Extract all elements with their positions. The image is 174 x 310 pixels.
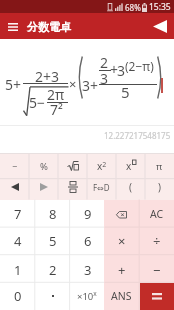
- button[interactable]: 0: [0, 282, 35, 310]
- staticText: 8: [49, 205, 57, 223]
- staticText: −: [153, 261, 161, 279]
- button[interactable]: [59, 156, 87, 176]
- staticText: 5−: [29, 93, 46, 112]
- staticText: F⇔D: [93, 182, 110, 193]
- staticText: +: [110, 60, 119, 79]
- staticText: 0: [14, 287, 22, 305]
- staticText: 12.227217548175: [104, 130, 171, 141]
- staticText: π: [156, 160, 163, 173]
- staticText: x2: [97, 159, 107, 173]
- button[interactable]: 2: [35, 256, 70, 284]
- staticText: ×10x: [77, 289, 97, 303]
- staticText: (2−π): [125, 58, 154, 74]
- staticText: ÷: [153, 232, 161, 250]
- staticText: −: [12, 160, 18, 172]
- staticText: 3: [100, 69, 109, 88]
- button[interactable]: [8, 23, 18, 31]
- button[interactable]: 1: [0, 256, 35, 284]
- button[interactable]: 3: [70, 256, 105, 284]
- button[interactable]: AC: [139, 200, 174, 228]
- button[interactable]: 5: [35, 227, 70, 255]
- button[interactable]: 7: [0, 200, 35, 228]
- staticText: 5: [121, 82, 130, 102]
- button[interactable]: [153, 20, 167, 33]
- staticText: (: [129, 180, 132, 194]
- button[interactable]: ×: [104, 227, 139, 255]
- staticText: +: [118, 261, 126, 279]
- staticText: 5: [49, 232, 57, 250]
- button[interactable]: x2: [87, 155, 116, 177]
- staticText: 15:35: [149, 1, 171, 13]
- staticText: 2: [49, 261, 57, 279]
- button[interactable]: (: [116, 176, 145, 198]
- button[interactable]: 9: [70, 200, 105, 228]
- staticText: AC: [150, 207, 164, 221]
- button[interactable]: x: [117, 156, 145, 176]
- staticText: 3: [84, 261, 92, 279]
- button[interactable]: [29, 176, 58, 198]
- button[interactable]: F⇔D: [87, 176, 116, 198]
- staticText: 2: [100, 53, 109, 72]
- button[interactable]: −: [139, 256, 174, 284]
- staticText: 7: [14, 205, 22, 223]
- staticText: 2π: [47, 85, 65, 104]
- button[interactable]: 8: [35, 200, 70, 228]
- staticText: ): [158, 180, 161, 194]
- staticText: 6: [84, 232, 92, 250]
- staticText: 分数電卓: [27, 20, 71, 34]
- staticText: ×: [118, 232, 126, 250]
- button[interactable]: 6: [70, 227, 105, 255]
- staticText: 2+3: [35, 67, 60, 86]
- staticText: ×: [69, 75, 77, 93]
- button[interactable]: ÷: [139, 227, 174, 255]
- button[interactable]: −: [0, 155, 29, 177]
- staticText: 68%: [125, 2, 141, 13]
- button[interactable]: 4: [0, 227, 35, 255]
- button[interactable]: [59, 177, 87, 197]
- button[interactable]: [104, 201, 138, 229]
- button[interactable]: ×10x: [69, 282, 104, 310]
- staticText: 3: [117, 61, 126, 80]
- button[interactable]: %: [29, 155, 58, 177]
- button[interactable]: +: [104, 256, 139, 284]
- staticText: 1: [14, 261, 22, 279]
- button[interactable]: [140, 283, 174, 310]
- staticText: ANS: [111, 289, 132, 303]
- staticText: 3+: [82, 76, 99, 95]
- button[interactable]: [0, 176, 29, 198]
- staticText: 4: [14, 232, 22, 250]
- button[interactable]: ): [145, 176, 174, 198]
- staticText: 5+: [5, 75, 22, 94]
- staticText: %: [40, 160, 48, 173]
- button[interactable]: ANS: [104, 282, 139, 310]
- staticText: x: [126, 159, 132, 173]
- button[interactable]: π: [145, 155, 174, 177]
- staticText: 7²: [50, 100, 63, 119]
- staticText: 9: [84, 205, 92, 223]
- button[interactable]: [35, 282, 70, 310]
